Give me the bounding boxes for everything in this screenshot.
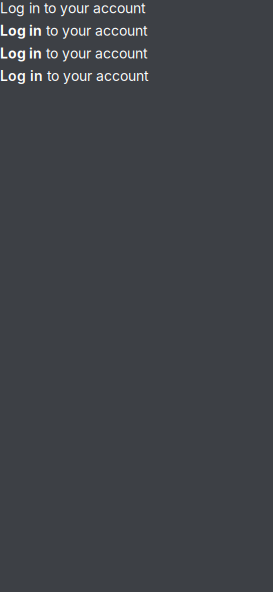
- staticText: Log in to your account: [0, 0, 146, 16]
- staticText: Log in to your account: [0, 45, 148, 61]
- staticText: Log in to your account: [0, 22, 148, 39]
- staticText: Log in to your account: [0, 67, 149, 84]
